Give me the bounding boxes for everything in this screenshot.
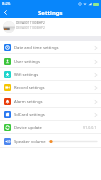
button[interactable]: User settings bbox=[0, 55, 101, 68]
staticText: Wifi settings bbox=[14, 72, 39, 78]
button[interactable]: Record settings bbox=[0, 81, 101, 94]
staticText: Speaker volume bbox=[14, 139, 46, 145]
button[interactable]: SdCard settings bbox=[0, 108, 101, 121]
button[interactable]: DEVA0011100BHP2 bbox=[0, 18, 101, 36]
staticText: SdCard settings bbox=[14, 112, 45, 118]
button[interactable]: Wifi settings bbox=[0, 68, 101, 81]
staticText: V1.0.0.1 bbox=[83, 125, 97, 130]
staticText: 8:26 bbox=[2, 1, 11, 7]
button[interactable]: Alarm settings bbox=[0, 95, 101, 108]
staticText: Date and time settings bbox=[14, 45, 59, 51]
staticText: User settings bbox=[14, 59, 40, 65]
staticText: Device update bbox=[14, 125, 42, 131]
staticText: Settings bbox=[38, 9, 63, 17]
staticText: DEVA0011100BHP2 bbox=[16, 21, 45, 25]
button[interactable]: Speaker volume bbox=[0, 135, 101, 148]
button[interactable]: Device update bbox=[0, 121, 101, 134]
staticText: Alarm settings bbox=[14, 99, 43, 105]
button[interactable]: Back bbox=[0, 7, 11, 18]
button[interactable]: Date and time settings bbox=[0, 41, 101, 54]
staticText: Record settings bbox=[14, 85, 45, 91]
staticText: DEVA0011100BHP2 bbox=[16, 26, 45, 30]
